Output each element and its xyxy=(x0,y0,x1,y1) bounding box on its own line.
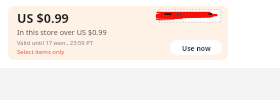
staticText: US $0.99 xyxy=(17,10,69,27)
other: Store logo xyxy=(8,6,228,60)
button[interactable]: US $0.99 xyxy=(8,6,228,60)
staticText: Use now xyxy=(182,44,211,53)
staticText: Select items only xyxy=(17,48,65,56)
staticText: In this store over US $0.99 xyxy=(17,27,107,37)
staticText: Valid until 17 июл., 23:59 PT xyxy=(17,39,93,47)
button[interactable]: Use now xyxy=(170,40,222,55)
